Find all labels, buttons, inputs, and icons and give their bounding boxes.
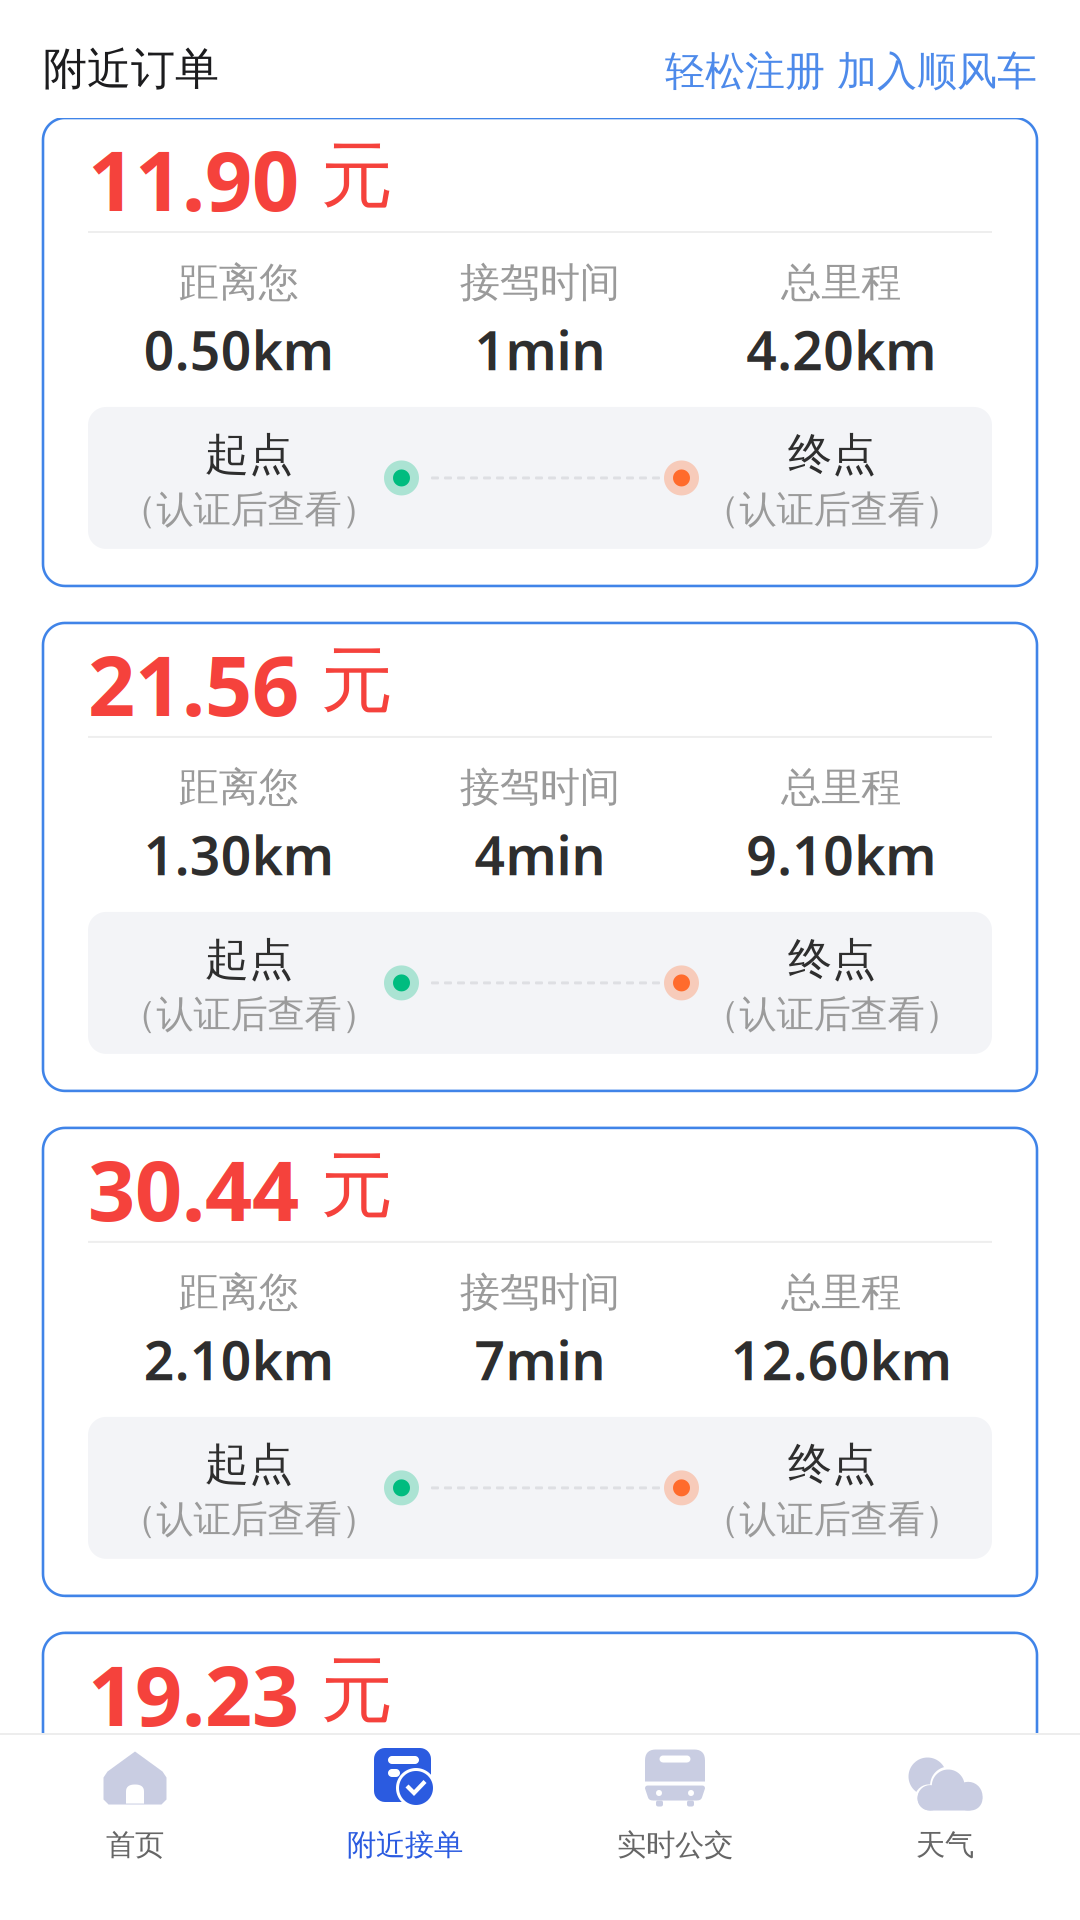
staticText: 距离您: [179, 258, 299, 307]
staticText: （认证后查看）: [119, 486, 378, 532]
staticText: 7min: [474, 1324, 605, 1395]
staticText: 4.20km: [746, 314, 936, 385]
staticText: 轻松注册 加入顺风车: [665, 47, 1037, 96]
staticText: 天气: [916, 1827, 974, 1863]
button[interactable]: 实时公交: [540, 1735, 810, 1920]
staticText: 终点: [788, 1437, 876, 1491]
staticText: （认证后查看）: [702, 991, 961, 1037]
staticText: 起点: [205, 1437, 293, 1491]
staticText: 实时公交: [617, 1827, 733, 1863]
staticText: （认证后查看）: [702, 1496, 961, 1542]
staticText: 1min: [474, 314, 605, 385]
button[interactable]: 附近接单: [270, 1735, 540, 1920]
staticText: 起点: [205, 932, 293, 986]
staticText: 附近订单: [43, 42, 219, 96]
staticText: 总里程: [781, 1268, 901, 1317]
staticText: 1.70km: [144, 1829, 334, 1900]
staticText: 21.56: [88, 629, 299, 739]
staticText: 7.80km: [746, 1829, 936, 1900]
staticText: （认证后查看）: [119, 1496, 378, 1542]
staticText: 首页: [106, 1827, 164, 1863]
staticText: 1.30km: [144, 819, 334, 890]
staticText: 终点: [788, 427, 876, 481]
staticText: 11.90: [88, 124, 299, 234]
staticText: 元: [321, 1646, 393, 1735]
staticText: 9.10km: [746, 819, 936, 890]
staticText: 距离您: [179, 763, 299, 812]
button[interactable]: 19.23: [43, 1633, 1037, 1920]
staticText: 附近接单: [347, 1827, 463, 1863]
button[interactable]: 11.90: [43, 118, 1037, 586]
staticText: 0.50km: [144, 314, 334, 385]
button[interactable]: 首页: [0, 1735, 270, 1920]
staticText: 起点: [205, 427, 293, 481]
staticText: 接驾时间: [460, 258, 620, 307]
staticText: 2.10km: [144, 1324, 334, 1395]
button[interactable]: 21.56: [43, 623, 1037, 1091]
staticText: 距离您: [179, 1268, 299, 1317]
staticText: （认证后查看）: [119, 991, 378, 1037]
staticText: （认证后查看）: [702, 486, 961, 532]
button[interactable]: 30.44: [43, 1128, 1037, 1596]
staticText: 4min: [474, 819, 605, 890]
staticText: 总里程: [781, 258, 901, 307]
staticText: 元: [321, 131, 393, 220]
button[interactable]: 轻松注册 加入顺风车: [665, 47, 1037, 96]
staticText: 元: [321, 636, 393, 725]
staticText: 30.44: [88, 1134, 299, 1244]
staticText: 元: [321, 1141, 393, 1230]
staticText: 12.60km: [731, 1324, 952, 1395]
button[interactable]: 天气: [810, 1735, 1080, 1920]
staticText: 接驾时间: [460, 763, 620, 812]
staticText: 19.23: [88, 1639, 299, 1749]
staticText: 终点: [788, 932, 876, 986]
staticText: 总里程: [781, 763, 901, 812]
staticText: 接驾时间: [460, 1268, 620, 1317]
